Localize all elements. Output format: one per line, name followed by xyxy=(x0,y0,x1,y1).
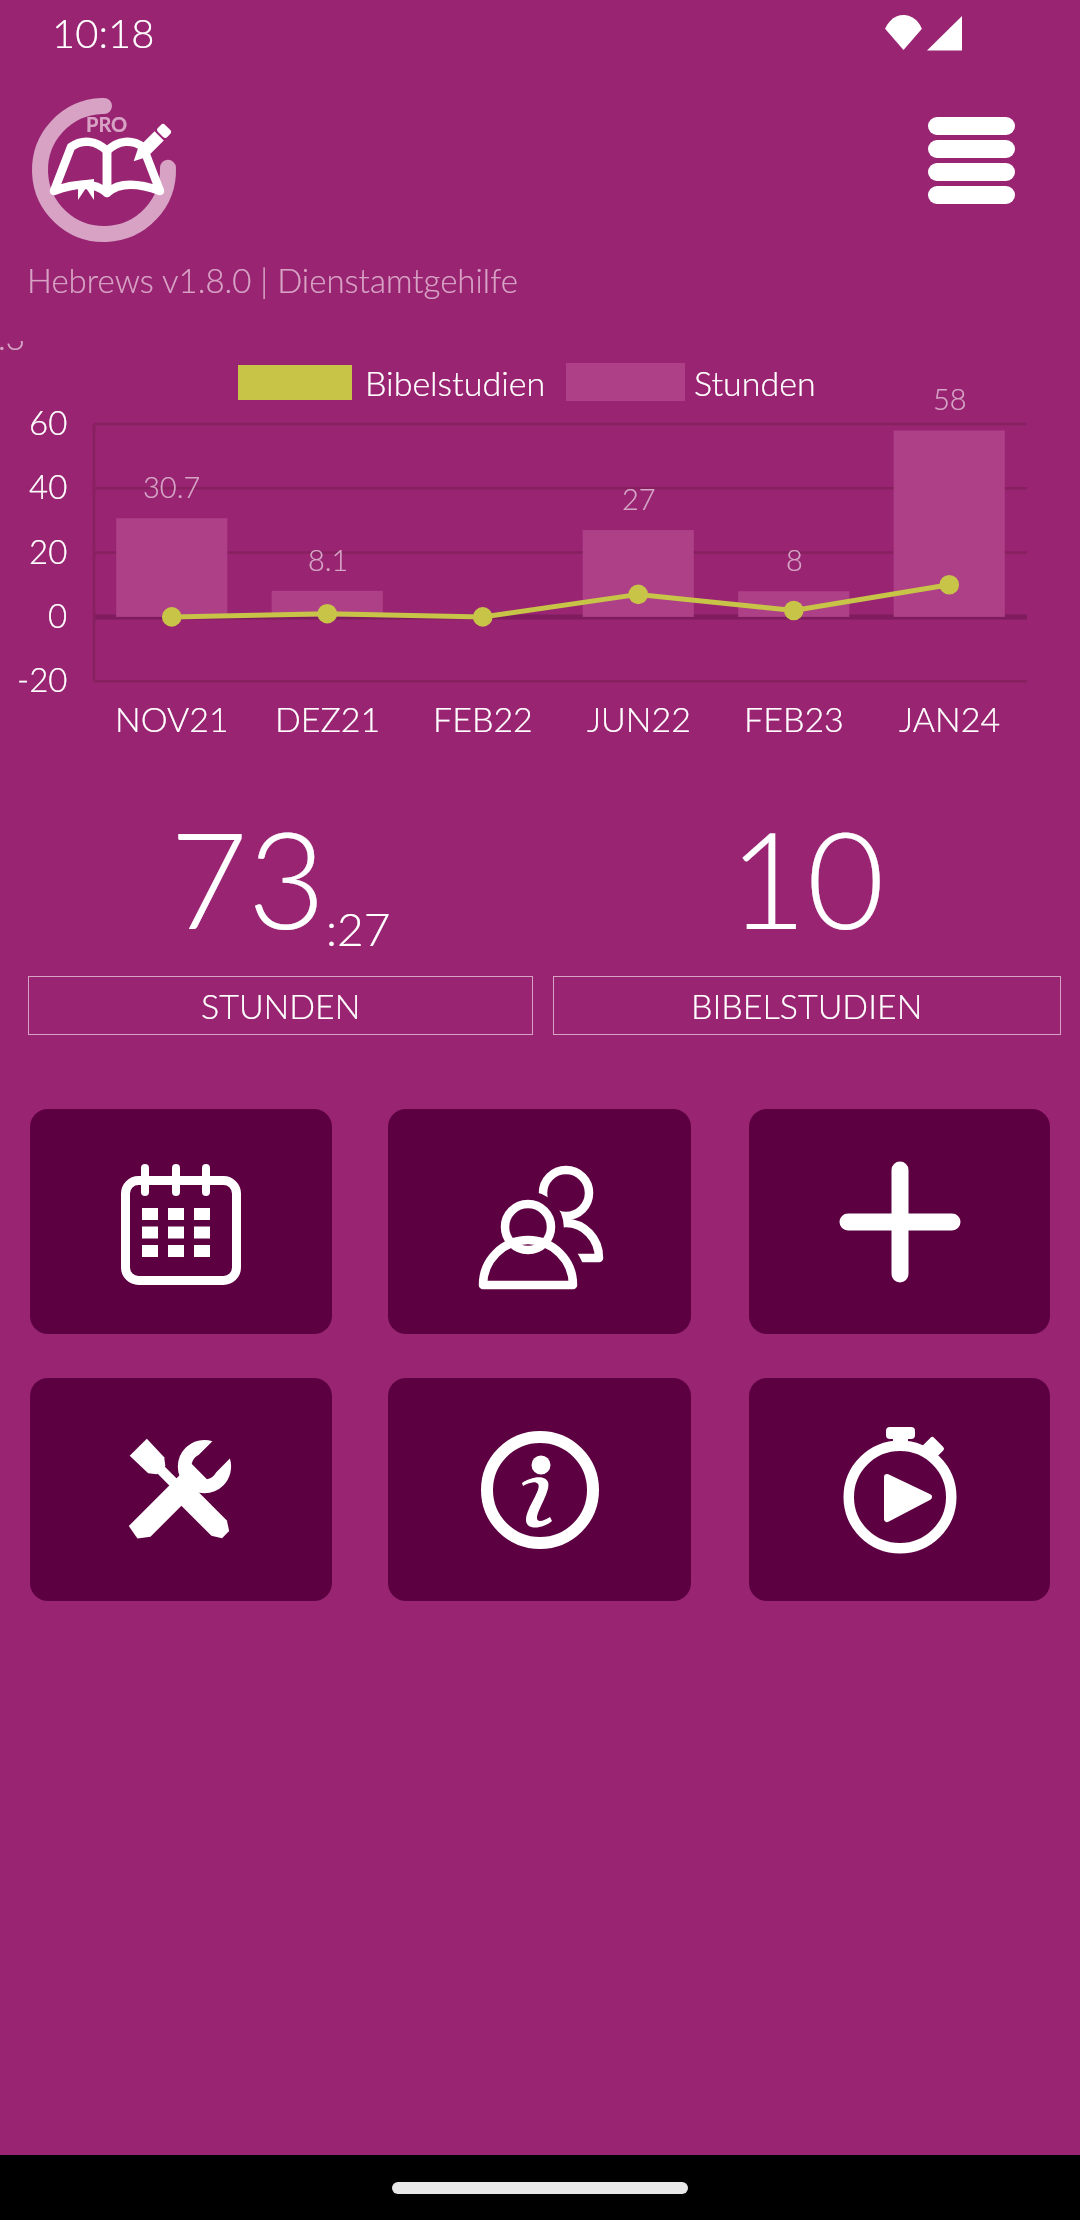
staticText: DEZ21 xyxy=(275,698,381,739)
staticText: JAN24 xyxy=(899,698,1001,739)
staticText: FEB22 xyxy=(433,698,533,739)
button[interactable]: Calendar xyxy=(30,1109,332,1334)
staticText: 30.7 xyxy=(143,469,201,504)
staticText: 10:18 xyxy=(52,9,155,57)
staticText: 8.1 xyxy=(308,542,349,577)
staticText: .3 xyxy=(0,341,25,357)
button[interactable]: Add xyxy=(749,1109,1050,1334)
button[interactable]: Tools xyxy=(30,1378,332,1601)
button[interactable]: Menu xyxy=(905,100,1020,210)
button[interactable]: Timer xyxy=(749,1378,1050,1601)
staticText: 58 xyxy=(933,381,967,416)
staticText: Stunden xyxy=(694,362,816,403)
staticText: 8 xyxy=(786,542,803,577)
staticText: 0 xyxy=(48,595,68,635)
staticText: :27 xyxy=(326,901,391,956)
staticText: 27 xyxy=(622,481,656,516)
staticText: 20 xyxy=(29,531,68,571)
staticText: -20 xyxy=(17,659,68,699)
staticText: PRO xyxy=(86,112,128,136)
staticText: BIBELSTUDIEN xyxy=(691,985,923,1026)
staticText: 40 xyxy=(29,466,68,506)
button[interactable]: STUNDEN xyxy=(28,976,533,1035)
staticText: NOV21 xyxy=(115,698,229,739)
staticText: STUNDEN xyxy=(201,985,361,1026)
button[interactable]: BIBELSTUDIEN xyxy=(553,976,1061,1035)
staticText: JUN22 xyxy=(587,698,691,739)
staticText: 73 xyxy=(170,797,326,958)
button[interactable]: Info xyxy=(388,1378,691,1601)
staticText: 10 xyxy=(729,797,885,958)
staticText: FEB23 xyxy=(744,698,844,739)
staticText: Bibelstudien xyxy=(365,362,546,403)
staticText: Hebrews v1.8.0 | Dienstamtgehilfe xyxy=(27,260,518,300)
button[interactable]: Contacts xyxy=(388,1109,691,1334)
staticText: 60 xyxy=(29,402,68,442)
